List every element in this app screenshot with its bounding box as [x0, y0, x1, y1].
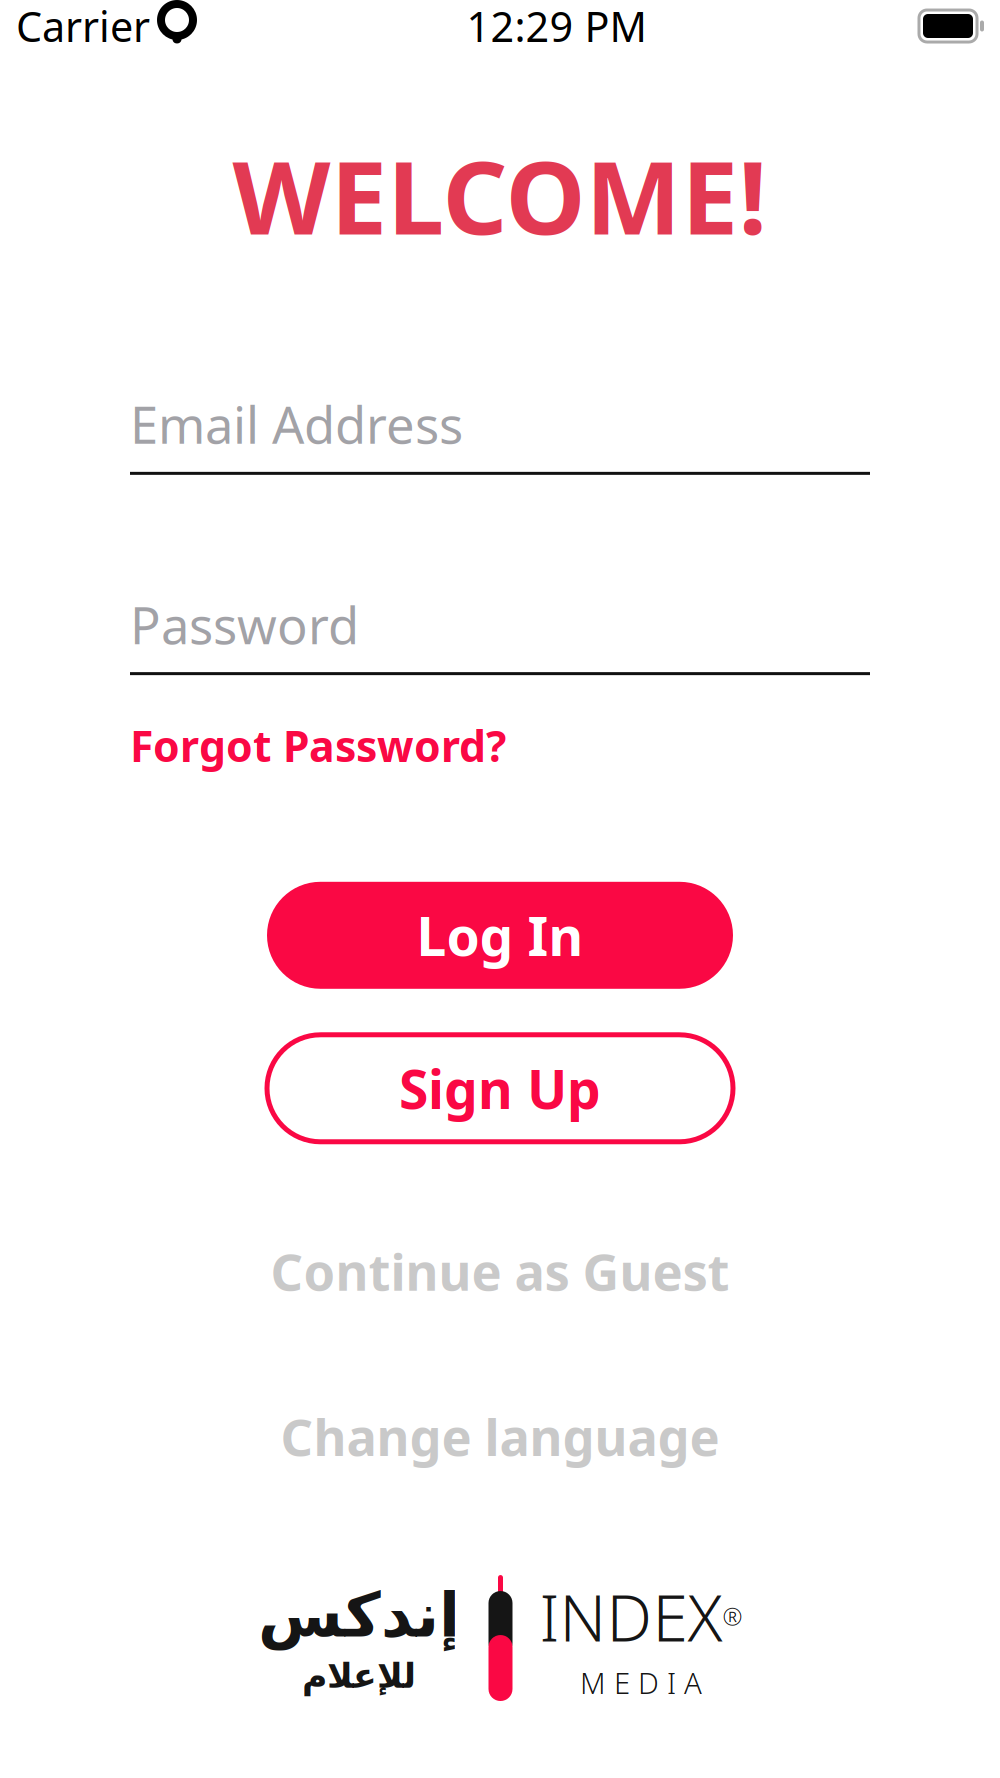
button[interactable]: Sign Up: [267, 1035, 733, 1142]
staticText: WELCOME!: [232, 128, 767, 263]
staticText: Continue as Guest: [270, 1237, 729, 1305]
button[interactable]: Change language: [280, 1391, 719, 1482]
staticText: Sign Up: [399, 1053, 601, 1124]
staticText: INDEX: [539, 1574, 722, 1659]
staticText: ®: [722, 1601, 742, 1632]
button[interactable]: Log In: [267, 882, 733, 989]
button[interactable]: Continue as Guest: [270, 1225, 729, 1317]
staticText: M E D I A: [580, 1663, 702, 1702]
staticText: Email Address: [130, 391, 463, 458]
staticText: Carrier: [16, 0, 150, 53]
staticText: Change language: [280, 1403, 719, 1470]
staticText: Password: [130, 591, 359, 658]
staticText: للإعلام: [301, 1656, 415, 1695]
button[interactable]: Forgot Password?: [130, 705, 506, 786]
staticText: 12:29 PM: [466, 0, 646, 53]
staticText: Forgot Password?: [130, 717, 506, 774]
staticText: Log In: [416, 900, 583, 971]
staticText: إندكس: [257, 1580, 459, 1650]
